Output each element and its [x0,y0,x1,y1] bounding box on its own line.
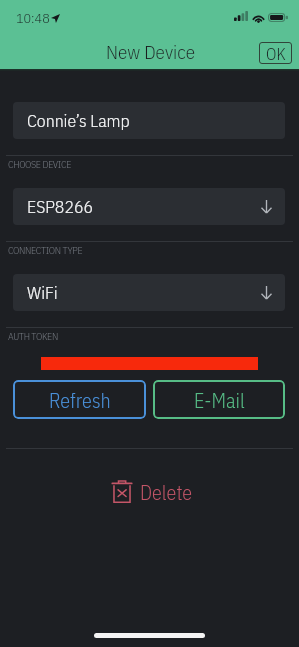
button[interactable]: Refresh [13,380,146,419]
button[interactable]: Delete [99,471,201,511]
button[interactable]: E-Mail [153,380,285,419]
staticText: New Device [106,40,195,65]
staticText: CONNECTION TYPE [8,244,83,257]
staticText: Connie’s Lamp [27,109,130,132]
staticText: E-Mail [194,387,245,413]
staticText: 10:48 [16,9,50,27]
button[interactable]: ESP8266 [13,188,285,225]
staticText: Refresh [49,387,111,413]
staticText: CHOOSE DEVICE [8,158,72,171]
button[interactable]: WiFi [13,274,285,311]
staticText: AUTH TOKEN [8,330,58,343]
other: Delete [112,480,132,503]
staticText: OK [266,43,286,64]
button[interactable]: OK [259,42,292,64]
button[interactable]: Connie’s Lamp [13,102,285,139]
staticText: ESP8266 [27,195,94,218]
staticText: WiFi [27,281,58,304]
staticText: Delete [140,479,193,505]
